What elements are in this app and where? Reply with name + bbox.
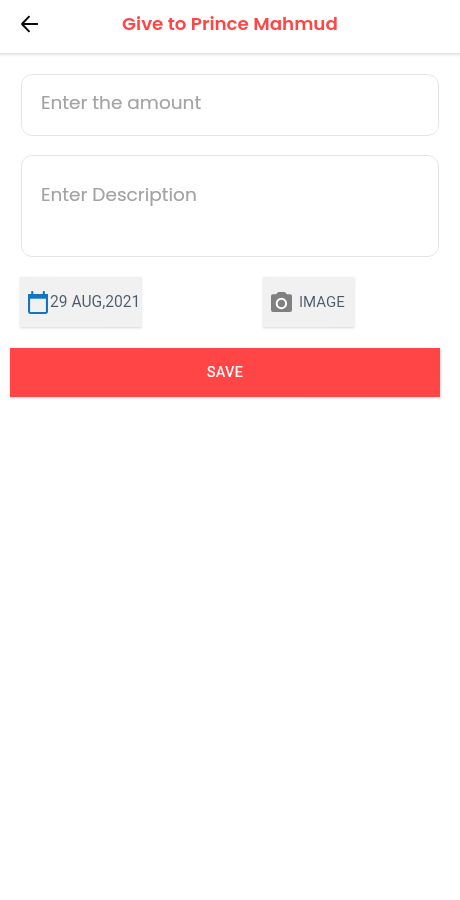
button[interactable]: Enter Description <box>21 155 439 257</box>
staticText: 29 AUG,2021 <box>50 293 141 311</box>
staticText: SAVE <box>207 364 244 380</box>
staticText: Enter the amount <box>41 90 202 116</box>
staticText: Give to Prince Mahmud <box>122 11 338 37</box>
staticText: IMAGE <box>299 293 345 311</box>
button[interactable]: IMAGE <box>263 277 354 327</box>
button[interactable]: 29 AUG,2021 <box>20 277 141 327</box>
button[interactable]: Enter the amount <box>21 74 439 136</box>
button[interactable]: Back <box>8 3 50 45</box>
staticText: Enter Description <box>41 182 197 208</box>
button[interactable]: SAVE <box>10 348 440 397</box>
